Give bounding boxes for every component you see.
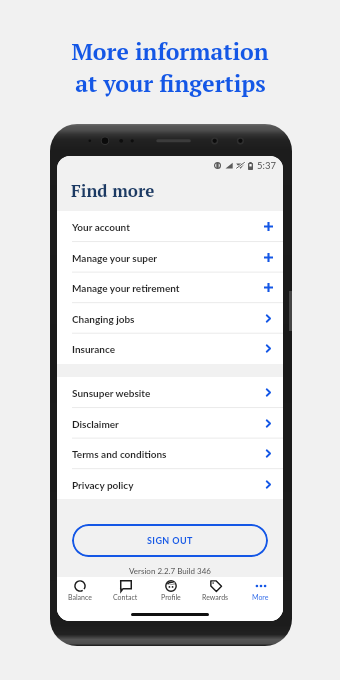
staticText: Insurance (72, 343, 116, 355)
button[interactable]: Profile (148, 578, 193, 607)
staticText: Terms and conditions (72, 448, 167, 460)
staticText: More information (71, 36, 269, 66)
button[interactable]: Privacy policy (57, 469, 283, 500)
button[interactable]: Balance (57, 578, 103, 607)
button[interactable]: More (238, 578, 283, 607)
button[interactable]: Disclaimer (57, 408, 283, 439)
staticText: at your fingertips (75, 68, 266, 98)
button[interactable]: Manage your retirement (57, 272, 283, 303)
staticText: Version 2.2.7 Build 346 (57, 566, 283, 576)
staticText: Your account (72, 221, 130, 233)
button[interactable]: SIGN OUT (72, 524, 268, 557)
staticText: Manage your super (72, 252, 158, 264)
staticText: Privacy policy (72, 479, 134, 491)
staticText: Balance (68, 593, 92, 601)
button[interactable]: Terms and conditions (57, 438, 283, 469)
button[interactable]: Contact (103, 578, 148, 607)
staticText: 5:37 (257, 160, 276, 171)
button[interactable]: Your account (57, 211, 283, 242)
other: Do not disturb (214, 162, 221, 169)
staticText: Profile (161, 593, 181, 601)
staticText: Changing jobs (72, 313, 135, 325)
staticText: More (252, 593, 269, 601)
button[interactable]: Insurance (57, 333, 283, 364)
button[interactable]: Rewards (193, 578, 238, 607)
staticText: Manage your retirement (72, 282, 180, 294)
staticText: Disclaimer (72, 418, 119, 430)
staticText: Rewards (202, 593, 229, 601)
button[interactable]: Manage your super (57, 242, 283, 273)
button[interactable]: Sunsuper website (57, 377, 283, 408)
button[interactable]: Changing jobs (57, 303, 283, 334)
staticText: SIGN OUT (147, 535, 193, 546)
staticText: Sunsuper website (72, 387, 151, 399)
staticText: Contact (113, 593, 138, 601)
staticText: Find more (71, 179, 155, 202)
